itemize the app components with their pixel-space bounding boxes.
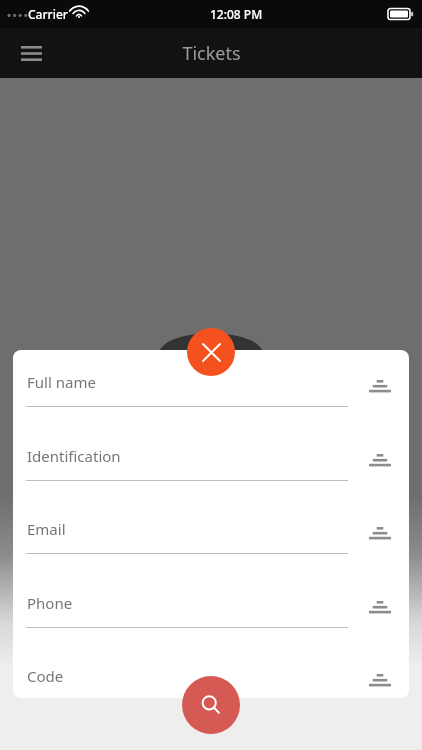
button[interactable]: Close bbox=[187, 328, 235, 376]
staticText: Tickets bbox=[182, 41, 241, 66]
button[interactable]: Sort options for Identification bbox=[363, 443, 397, 477]
staticText: 12:08 PM bbox=[210, 6, 263, 22]
button[interactable]: Sort options for Full name bbox=[363, 369, 397, 403]
button[interactable]: Phone bbox=[13, 589, 409, 645]
button[interactable]: Sort options for Code bbox=[363, 663, 397, 697]
button[interactable]: Full name bbox=[13, 368, 409, 424]
button[interactable]: Sort options for Phone bbox=[363, 590, 397, 624]
staticText: Phone bbox=[27, 593, 73, 613]
button[interactable]: Search bbox=[182, 676, 240, 734]
staticText: Full name bbox=[27, 372, 96, 392]
staticText: Identification bbox=[27, 446, 121, 466]
button[interactable]: Code bbox=[13, 662, 409, 698]
button[interactable]: Open navigation menu bbox=[10, 32, 52, 74]
staticText: Email bbox=[27, 519, 66, 539]
button[interactable]: Identification bbox=[13, 442, 409, 498]
button[interactable]: Email bbox=[13, 515, 409, 571]
staticText: Code bbox=[27, 666, 64, 686]
staticText: Carrier bbox=[28, 6, 68, 22]
button[interactable]: Sort options for Email bbox=[363, 516, 397, 550]
